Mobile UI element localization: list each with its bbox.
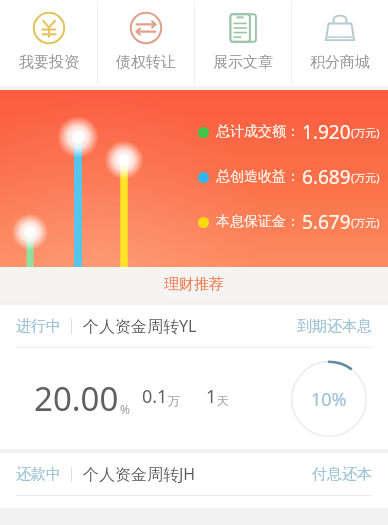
staticText: (万元) [351,170,380,185]
staticText: 总创造收益： [216,168,300,186]
staticText: 展示文章 [213,53,273,72]
button[interactable]: 进行中 [0,305,388,347]
button[interactable]: 积分商城 [292,0,388,86]
button[interactable]: 我要投资 [0,0,97,86]
staticText: 1.920 [302,119,351,145]
staticText: 5.679 [302,209,351,235]
staticText: 总计成交额： [216,123,300,141]
button[interactable]: 展示文章 [195,0,291,86]
staticText: 债权转让 [116,53,176,72]
staticText: 6.689 [302,164,351,190]
button[interactable]: 还款中 [0,453,388,508]
staticText: 本息保证金： [216,213,300,231]
staticText: % [120,401,130,417]
staticText: 我要投资 [19,53,79,72]
staticText: 天 [217,393,229,408]
staticText: 0.1 [142,384,168,409]
staticText: 1 [206,384,217,409]
staticText: 20.00 [34,376,119,421]
staticText: 进行中 [16,317,61,336]
staticText: 个人资金周转JH [83,463,196,485]
staticText: (万元) [351,125,380,140]
staticText: 10% [311,387,347,412]
staticText: 个人资金周转YL [83,315,197,337]
staticText: 万 [168,393,180,408]
staticText: 理财推荐 [164,275,224,294]
staticText: 到期还本息 [297,317,372,336]
staticText: 还款中 [16,465,61,484]
button[interactable]: 债权转让 [98,0,194,86]
button[interactable]: 还款中 [0,453,388,495]
staticText: 积分商城 [310,53,370,72]
staticText: 付息还本 [312,465,372,484]
staticText: (万元) [351,215,380,230]
button[interactable]: 进行中 [0,305,388,449]
